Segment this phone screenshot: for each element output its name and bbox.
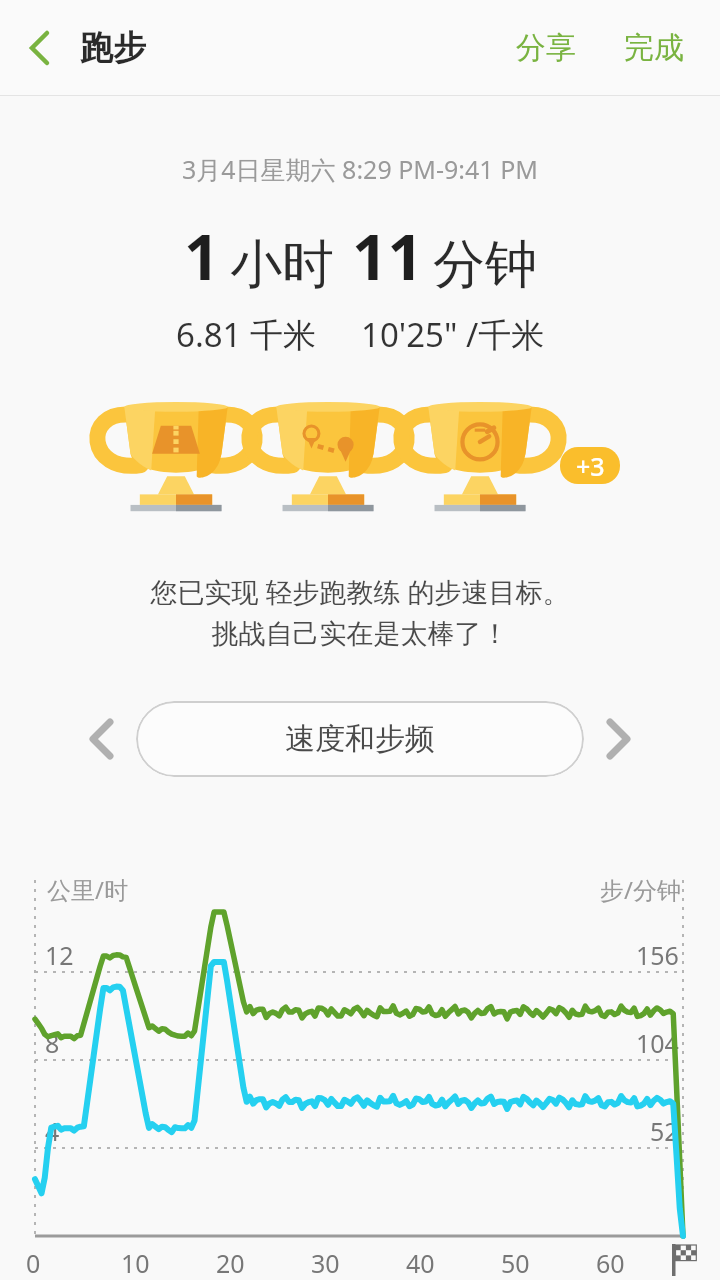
staticText: 52 [650, 1114, 679, 1148]
button[interactable]: Back [8, 17, 70, 79]
button[interactable]: 分享 [502, 19, 590, 77]
staticText: 12 [45, 938, 74, 972]
staticText: 104 [636, 1026, 679, 1060]
button[interactable]: Next chart [584, 704, 654, 774]
staticText: 您已实现 轻步跑教练 的步速目标。 挑战自己实在是太棒了！ [150, 573, 570, 651]
staticText: 6.81 千米 [176, 312, 317, 357]
button[interactable]: Time trophy [404, 395, 556, 535]
staticText: 20 [216, 1246, 245, 1280]
staticText: 公里/时 [47, 873, 128, 906]
staticText: 0 [26, 1246, 41, 1280]
button[interactable]: Location trophy [252, 395, 404, 535]
staticText: 3月4日星期六 8:29 PM-9:41 PM [182, 152, 538, 186]
staticText: 11 [352, 214, 423, 298]
staticText: 60 [596, 1246, 625, 1280]
staticText: 8 [45, 1026, 60, 1060]
staticText: 分钟 [433, 232, 537, 298]
staticText: 156 [636, 938, 679, 972]
button[interactable]: Previous chart [66, 704, 136, 774]
button[interactable]: 速度和步频 [136, 701, 584, 777]
staticText: 步/分钟 [600, 873, 681, 906]
staticText: 分享 [516, 29, 576, 67]
staticText: 40 [406, 1246, 435, 1280]
staticText: 完成 [624, 29, 684, 67]
staticText: 10 [121, 1246, 150, 1280]
button[interactable]: Route trophy [100, 395, 252, 535]
staticText: 速度和步频 [285, 720, 435, 758]
button[interactable]: 完成 [612, 19, 696, 77]
staticText: 小时 [230, 232, 334, 298]
staticText: 30 [311, 1246, 340, 1280]
staticText: 4 [45, 1114, 60, 1148]
staticText: 1 [184, 214, 220, 298]
staticText: 跑步 [80, 27, 146, 69]
staticText: +3 [576, 449, 605, 483]
staticText: 10'25" /千米 [361, 312, 545, 357]
button[interactable]: +3 [560, 447, 620, 484]
staticText: 50 [501, 1246, 530, 1280]
